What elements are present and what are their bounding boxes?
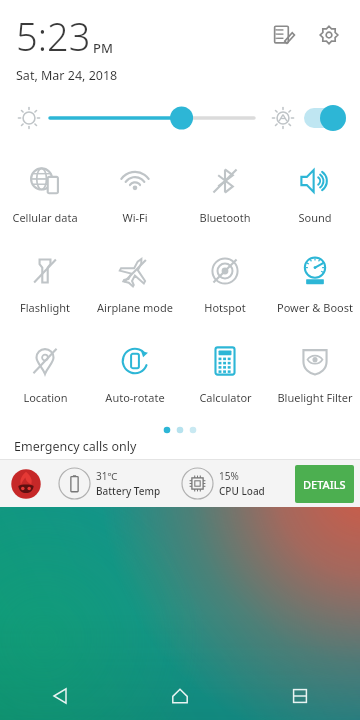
button[interactable]: Hotspot xyxy=(180,241,270,331)
button[interactable]: Wi-Fi xyxy=(90,151,180,241)
staticText: Auto-rotate xyxy=(105,390,165,405)
button[interactable]: Auto brightness xyxy=(268,103,298,133)
button[interactable]: Power & Boost xyxy=(270,241,360,331)
button[interactable]: Home xyxy=(120,672,240,720)
staticText: 31℃ xyxy=(96,469,118,483)
button[interactable]: Brightness slider xyxy=(50,102,254,134)
staticText: Flashlight xyxy=(20,300,70,315)
staticText: Cellular data xyxy=(12,210,78,225)
staticText: Sound xyxy=(298,210,332,225)
button[interactable]: Bluelight Filter xyxy=(270,331,360,421)
button[interactable]: Back xyxy=(0,672,120,720)
staticText: Airplane mode xyxy=(97,300,173,315)
button[interactable]: Bluetooth xyxy=(180,151,270,241)
staticText: Calculator xyxy=(199,390,252,405)
button[interactable]: Recents xyxy=(240,672,360,720)
button[interactable]: DETAILS xyxy=(295,465,354,503)
button[interactable]: Auto-rotate xyxy=(90,331,180,421)
staticText: PM xyxy=(93,39,113,57)
button[interactable]: Sound xyxy=(270,151,360,241)
button[interactable]: Settings xyxy=(312,18,346,52)
staticText: Sat, Mar 24, 2018 xyxy=(16,67,118,84)
staticText: DETAILS xyxy=(303,477,346,492)
button[interactable]: AnTuTu monitor xyxy=(8,466,44,502)
staticText: Bluetooth xyxy=(199,210,251,225)
staticText: Battery Temp xyxy=(96,484,161,498)
staticText: Hotspot xyxy=(204,300,246,315)
staticText: Emergency calls only xyxy=(14,438,137,455)
button[interactable]: Brightness xyxy=(14,103,44,133)
staticText: Wi-Fi xyxy=(122,210,148,225)
button[interactable]: Location xyxy=(0,331,90,421)
staticText: CPU Load xyxy=(219,484,265,498)
button[interactable]: Edit quick settings xyxy=(266,18,300,52)
staticText: Bluelight Filter xyxy=(277,390,353,405)
staticText: Location xyxy=(23,390,68,405)
staticText: 5:23 xyxy=(16,10,91,62)
button[interactable]: Cellular data xyxy=(0,151,90,241)
button[interactable]: Auto brightness toggle xyxy=(304,105,346,131)
button[interactable]: Calculator xyxy=(180,331,270,421)
button[interactable]: Flashlight xyxy=(0,241,90,331)
button[interactable]: Airplane mode xyxy=(90,241,180,331)
staticText: 15% xyxy=(219,469,239,483)
staticText: Power & Boost xyxy=(277,300,353,315)
